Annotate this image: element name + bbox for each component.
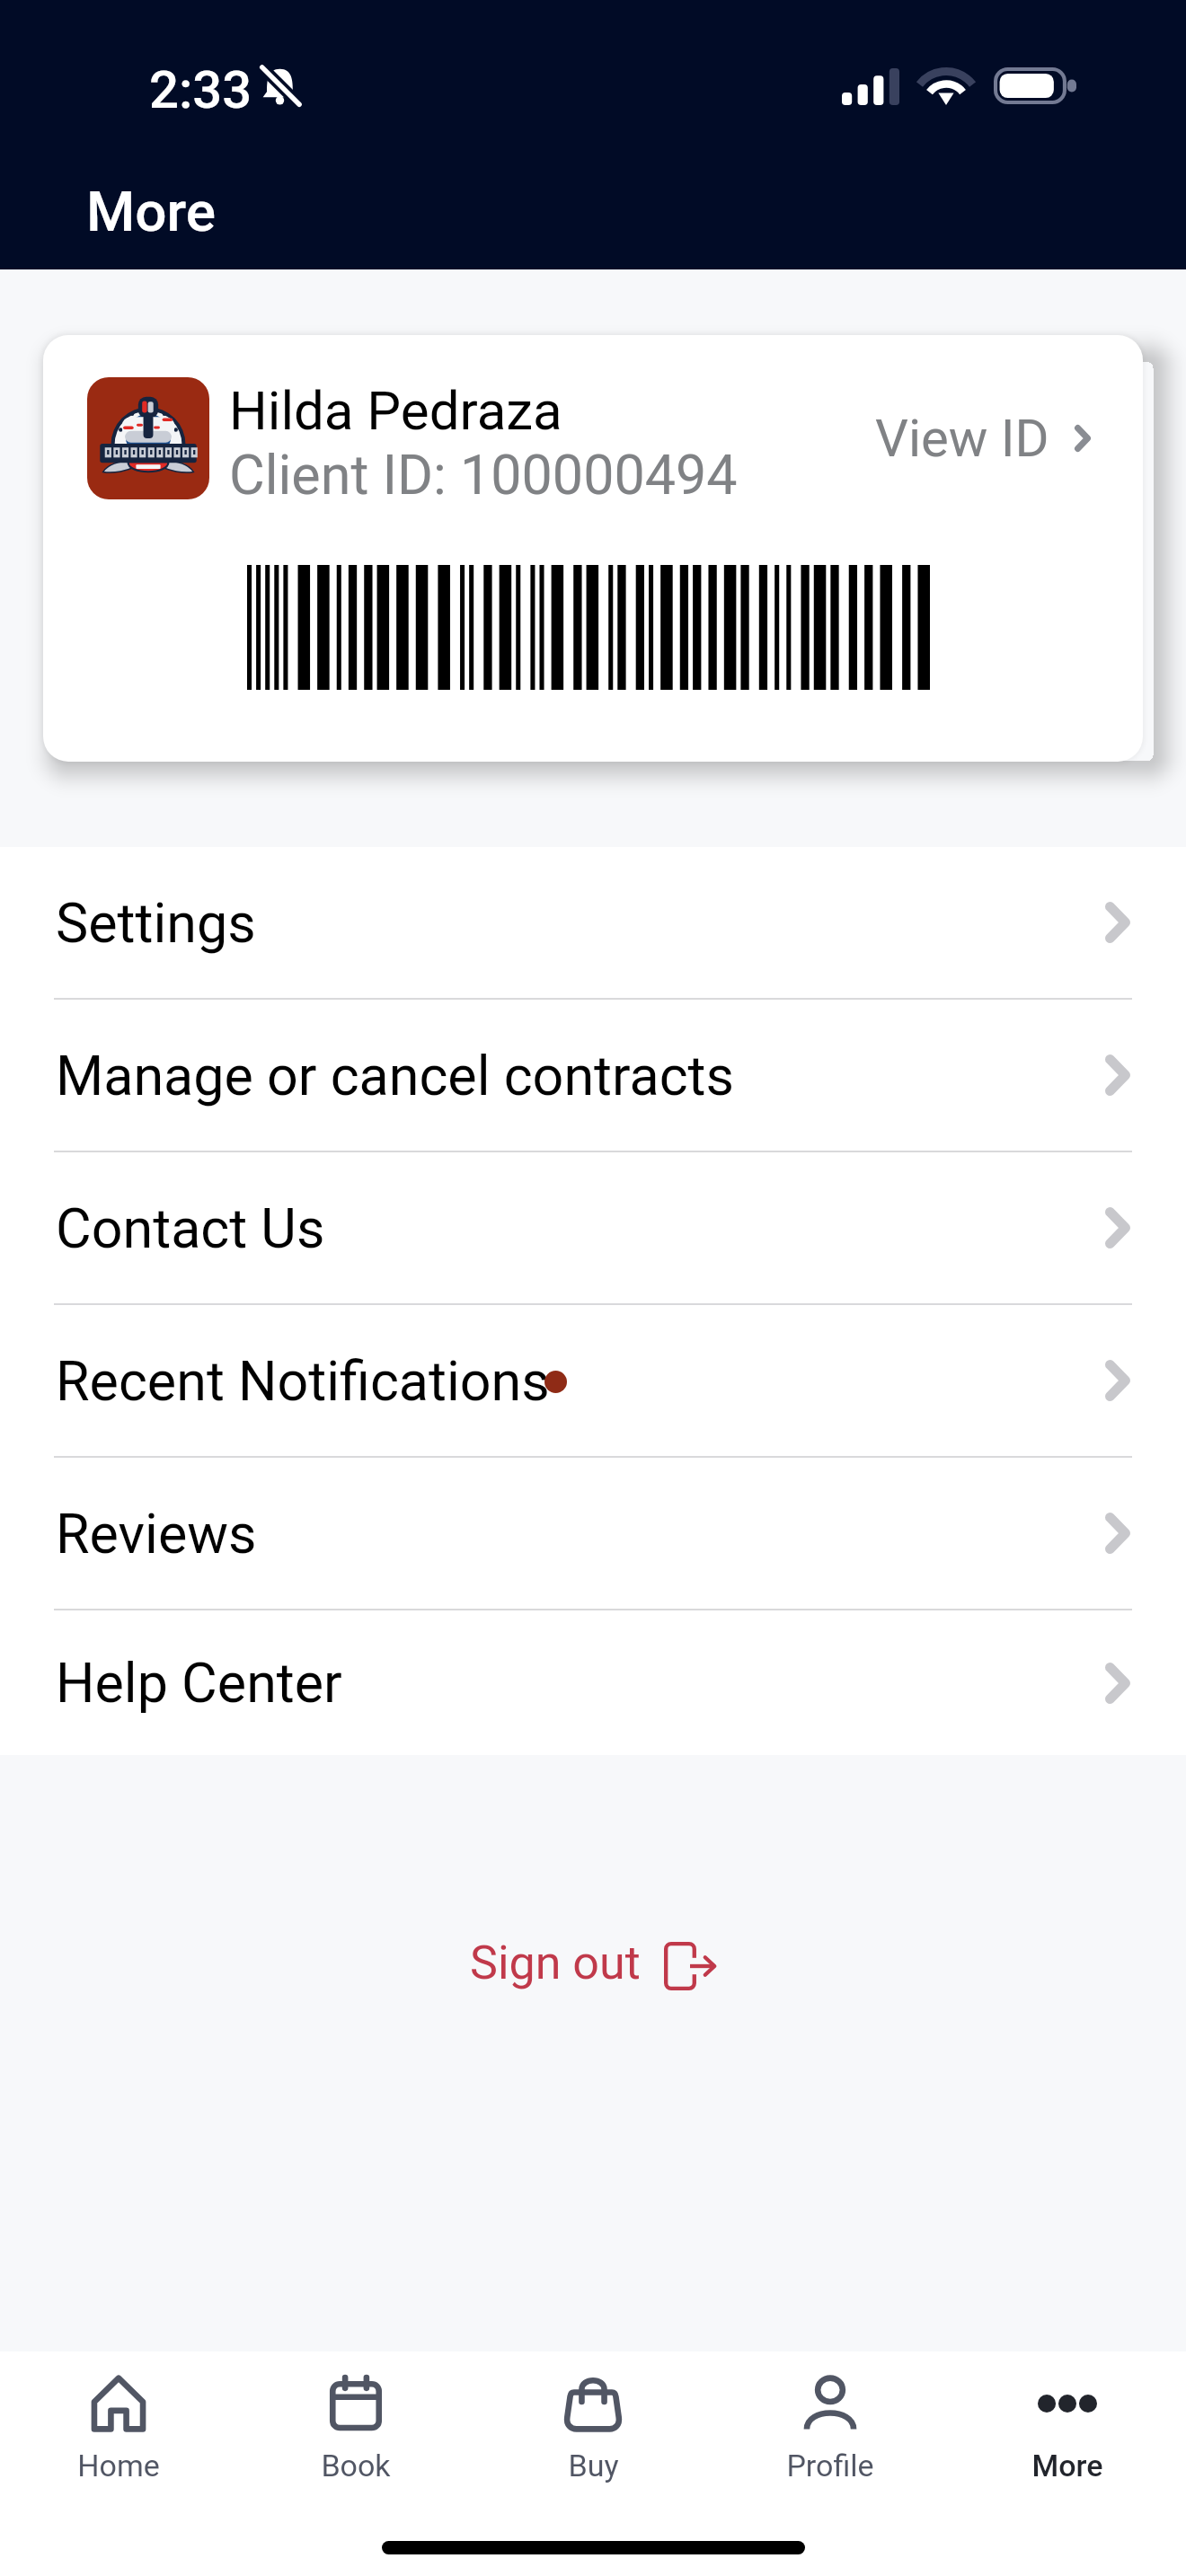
button[interactable]: Buy	[474, 2351, 712, 2506]
staticText: Client ID: 100000494	[229, 443, 738, 501]
button[interactable]: Manage or cancel contracts	[0, 1000, 1186, 1151]
other: Battery	[994, 67, 1076, 104]
staticText: More	[1031, 2448, 1103, 2483]
staticText: Book	[321, 2448, 391, 2483]
button[interactable]: Profile	[712, 2351, 949, 2506]
staticText: Contact Us	[56, 1196, 325, 1260]
button[interactable]: Help Center	[0, 1610, 1186, 1755]
button[interactable]: More	[949, 2351, 1186, 2506]
button[interactable]: Sign out	[448, 1918, 738, 2008]
staticText: 2:33	[149, 59, 252, 120]
button[interactable]: Reviews	[0, 1458, 1186, 1609]
button[interactable]: Hilda Pedraza	[43, 335, 1143, 762]
staticText: More	[86, 179, 217, 244]
button[interactable]: Book	[237, 2351, 474, 2506]
staticText: Profile	[786, 2448, 874, 2483]
staticText: Manage or cancel contracts	[56, 1044, 735, 1107]
button[interactable]: Contact Us	[0, 1152, 1186, 1303]
staticText: Sign out	[470, 1936, 641, 1990]
other: Silent mode	[260, 66, 300, 107]
staticText: Buy	[568, 2448, 619, 2483]
staticText: Recent Notifications	[56, 1349, 550, 1413]
other: Wi-Fi	[920, 66, 972, 106]
other: Cellular signal	[842, 68, 899, 105]
staticText: Reviews	[56, 1502, 257, 1566]
button[interactable]: View ID	[866, 392, 1100, 485]
staticText: Home	[77, 2448, 160, 2483]
button[interactable]: Settings	[0, 847, 1186, 998]
staticText: View ID	[875, 408, 1049, 469]
staticText: Hilda Pedraza	[229, 379, 562, 442]
button[interactable]: Recent Notifications	[0, 1305, 1186, 1456]
staticText: Settings	[56, 891, 256, 955]
button[interactable]: Home	[0, 2351, 237, 2506]
staticText: Help Center	[56, 1651, 342, 1715]
